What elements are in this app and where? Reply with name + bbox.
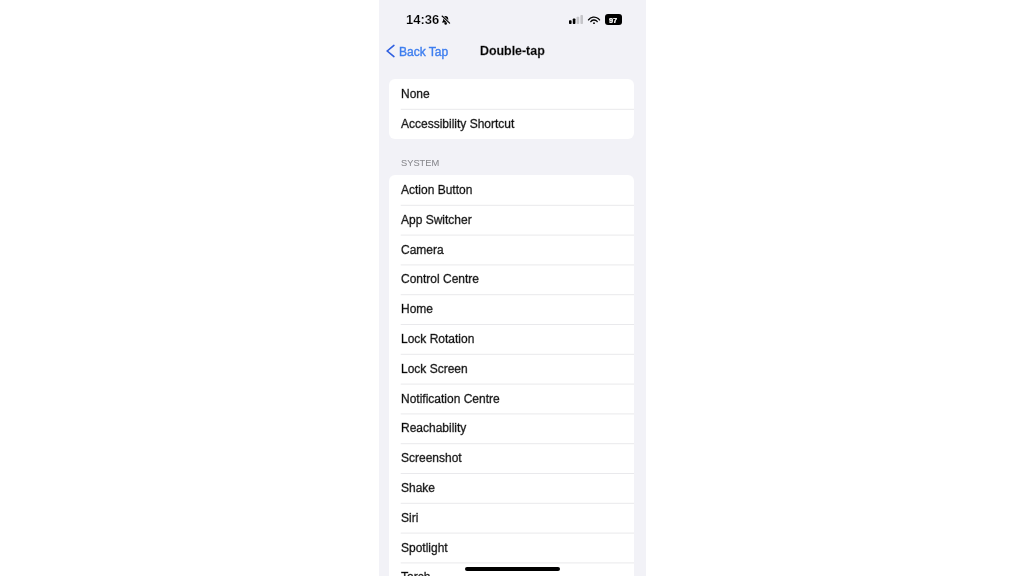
button[interactable]: Torch [389, 562, 634, 576]
button[interactable]: Screenshot [389, 443, 634, 473]
button[interactable]: None [389, 79, 634, 109]
staticText: App Switcher [401, 213, 472, 226]
staticText: 14:36 [406, 12, 440, 27]
staticText: Notification Centre [401, 392, 500, 405]
staticText: Lock Rotation [401, 332, 475, 345]
button[interactable]: App Switcher [389, 205, 634, 235]
staticText: Siri [401, 511, 419, 524]
staticText: Back Tap [399, 45, 449, 58]
staticText: Action Button [401, 183, 473, 196]
staticText: Camera [401, 243, 444, 256]
staticText: SYSTEM [401, 158, 440, 168]
staticText: App Switcher [401, 213, 472, 226]
staticText: Torch [401, 570, 431, 576]
button[interactable]: Notification Centre [389, 384, 634, 414]
button[interactable]: Shake [389, 473, 634, 503]
other: Back [386, 44, 395, 58]
other: Silent mode [441, 15, 450, 25]
staticText: Control Centre [401, 272, 480, 285]
staticText: Shake [401, 481, 436, 494]
button[interactable]: Lock Screen [389, 354, 634, 384]
staticText: None [401, 87, 430, 100]
staticText: Home [401, 302, 434, 315]
button[interactable]: Home [389, 294, 634, 324]
staticText: Control Centre [401, 272, 480, 285]
staticText: Torch [401, 570, 431, 576]
staticText: Lock Screen [401, 362, 468, 375]
staticText: Spotlight [401, 541, 448, 554]
staticText: Back Tap [399, 45, 449, 58]
button[interactable]: Camera [389, 235, 634, 265]
staticText: Reachability [401, 421, 467, 434]
staticText: Spotlight [401, 541, 448, 554]
staticText: Siri [401, 511, 419, 524]
button[interactable]: Control Centre [389, 264, 634, 294]
button[interactable]: Spotlight [389, 533, 634, 563]
staticText: Camera [401, 243, 444, 256]
button[interactable]: Siri [389, 503, 634, 533]
staticText: Lock Rotation [401, 332, 475, 345]
staticText: Lock Screen [401, 362, 468, 375]
button[interactable]: Accessibility Shortcut [389, 109, 634, 139]
button[interactable]: Back [386, 44, 449, 58]
staticText: Action Button [401, 183, 473, 196]
staticText: Reachability [401, 421, 467, 434]
staticText: Accessibility Shortcut [401, 117, 515, 130]
button[interactable]: Action Button [389, 175, 634, 205]
staticText: None [401, 87, 430, 100]
staticText: Double-tap [480, 44, 545, 58]
staticText: Home [401, 302, 434, 315]
staticText: Double-tap [480, 44, 545, 58]
staticText: Shake [401, 481, 436, 494]
staticText: Accessibility Shortcut [401, 117, 515, 130]
button[interactable]: Reachability [389, 413, 634, 443]
staticText: Screenshot [401, 451, 462, 464]
staticText: Notification Centre [401, 392, 500, 405]
staticText: Screenshot [401, 451, 462, 464]
button[interactable]: Lock Rotation [389, 324, 634, 354]
staticText: 97 [609, 16, 618, 24]
